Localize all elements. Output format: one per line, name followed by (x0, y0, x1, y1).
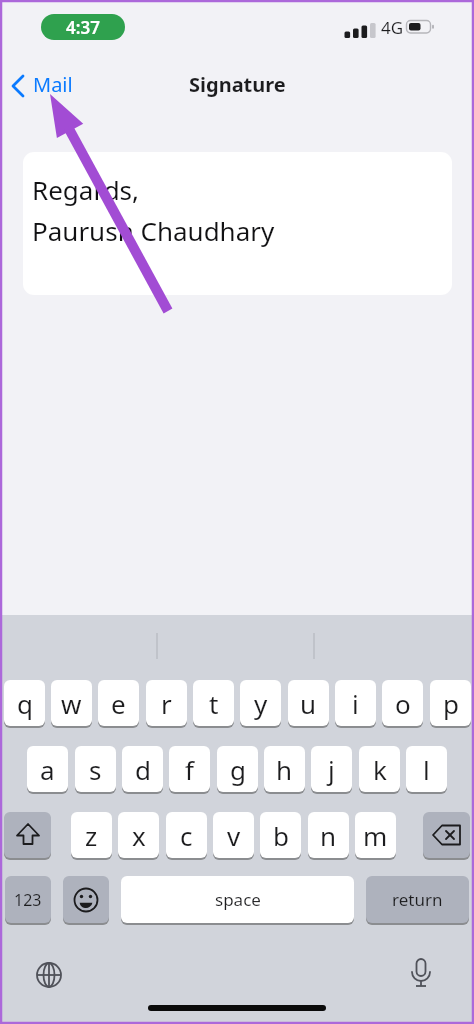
staticText: 123 (14, 889, 42, 911)
button[interactable]: Regards, (23, 152, 452, 295)
staticText: i (352, 686, 359, 721)
button[interactable]: e (98, 680, 139, 726)
button[interactable]: n (308, 812, 349, 858)
staticText: Signature (189, 71, 286, 98)
staticText: v (227, 818, 241, 853)
button[interactable]: space (121, 876, 354, 923)
staticText: k (373, 752, 387, 787)
button[interactable]: t (193, 680, 234, 726)
staticText: y (254, 686, 268, 721)
button[interactable]: l (406, 746, 447, 792)
staticText: l (423, 752, 430, 787)
staticText: d (135, 752, 151, 787)
staticText: u (300, 686, 317, 721)
staticText: m (363, 818, 388, 853)
button[interactable]: u (288, 680, 329, 726)
staticText: q (17, 686, 33, 721)
staticText: t (209, 686, 219, 721)
button[interactable]: i (335, 680, 376, 726)
button[interactable] (63, 876, 109, 923)
staticText: space (215, 888, 261, 911)
button[interactable]: s (75, 746, 116, 792)
button[interactable]: f (169, 746, 210, 792)
staticText: e (111, 686, 126, 721)
button[interactable]: 4:37 (41, 14, 125, 40)
button[interactable]: h (264, 746, 305, 792)
staticText: return (392, 888, 443, 911)
staticText: f (185, 752, 194, 787)
staticText: n (320, 818, 337, 853)
staticText: c (180, 818, 193, 853)
staticText: Paurush Chaudhary (32, 213, 275, 248)
button[interactable]: p (430, 680, 471, 726)
button[interactable]: m (355, 812, 396, 858)
button[interactable]: 123 (5, 876, 51, 923)
button[interactable]: j (311, 746, 352, 792)
button[interactable]: z (71, 812, 112, 858)
button[interactable]: return (366, 876, 469, 923)
button[interactable]: y (240, 680, 281, 726)
staticText: Mail (33, 71, 73, 98)
staticText: 4G (381, 16, 404, 39)
staticText: 4:37 (66, 16, 100, 39)
button[interactable]: g (217, 746, 258, 792)
button[interactable]: d (122, 746, 163, 792)
staticText: j (328, 752, 335, 787)
staticText: x (132, 818, 146, 853)
button[interactable]: q (4, 680, 45, 726)
staticText: Regards, (32, 172, 140, 207)
staticText: b (273, 818, 289, 853)
staticText: p (443, 686, 459, 721)
button[interactable]: c (166, 812, 207, 858)
button[interactable]: x (118, 812, 159, 858)
button[interactable]: v (213, 812, 254, 858)
staticText: o (395, 686, 411, 721)
staticText: g (230, 752, 246, 787)
button[interactable]: k (359, 746, 400, 792)
button[interactable]: o (382, 680, 423, 726)
staticText: r (161, 686, 172, 721)
staticText: z (85, 818, 98, 853)
button[interactable]: b (260, 812, 301, 858)
staticText: s (89, 752, 102, 787)
button[interactable]: r (146, 680, 187, 726)
button[interactable]: Mail (8, 68, 88, 100)
staticText: a (40, 752, 55, 787)
button[interactable] (4, 812, 51, 858)
button[interactable]: a (27, 746, 68, 792)
staticText: h (276, 752, 293, 787)
staticText: w (61, 686, 82, 721)
button[interactable]: w (51, 680, 92, 726)
button[interactable] (423, 812, 470, 858)
